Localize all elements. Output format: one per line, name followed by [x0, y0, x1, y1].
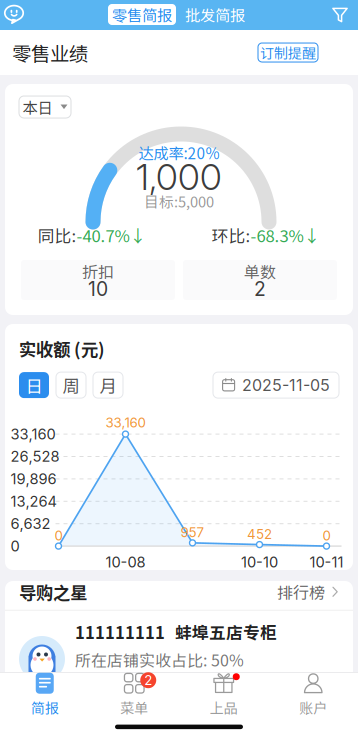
staticText: 蚌埠五店专柜 [175, 620, 277, 644]
button[interactable]: 本日 [19, 96, 71, 118]
staticText: 2 [144, 672, 152, 688]
staticText: 33,160 [105, 414, 145, 431]
button[interactable]: 简报 [0, 673, 89, 717]
staticText: 简报 [31, 697, 59, 717]
staticText: -40.7%↓ [76, 223, 146, 247]
button[interactable]: 导购之星 [5, 574, 353, 610]
staticText: 周 [62, 372, 79, 398]
staticText: 折扣 [82, 259, 114, 283]
staticText: 本日实收额: 500 [75, 675, 190, 698]
staticText: 6,632 [10, 515, 50, 532]
staticText: 0 [54, 527, 62, 544]
staticText: 2025-11-05 [242, 375, 330, 395]
button[interactable]: 2 [89, 673, 179, 717]
staticText: 批发简报 [185, 3, 245, 26]
staticText: 月 [99, 372, 116, 398]
staticText: 目标:5,000 [144, 190, 214, 212]
staticText: 导购之星 [19, 579, 87, 604]
button[interactable]: 批发简报 [185, 4, 245, 25]
staticText: 所在店铺实收占比: 50% [75, 648, 244, 671]
staticText: 订制提醒 [260, 42, 316, 63]
staticText: 日 [25, 372, 42, 398]
staticText: 0 [322, 527, 330, 544]
staticText: 环比: [211, 223, 250, 247]
button[interactable]: 日 [19, 372, 49, 398]
staticText: 0 [10, 537, 19, 555]
staticText: 零售简报 [112, 3, 172, 26]
button[interactable]: 消息 [0, 0, 29, 30]
button[interactable]: 零售简报 [108, 4, 176, 25]
staticText: 零售业绩 [12, 38, 88, 66]
button[interactable]: 上品 [179, 673, 268, 717]
button[interactable]: 2025-11-05 [213, 372, 339, 398]
button[interactable]: 月 [93, 372, 123, 398]
staticText: 26,528 [10, 448, 59, 465]
staticText: 957 [180, 524, 204, 540]
staticText: 同比: [37, 223, 76, 247]
button[interactable]: 账户 [268, 673, 358, 717]
staticText: 13,264 [10, 492, 56, 510]
staticText: 达成率:20% [138, 141, 219, 164]
staticText: 10 [88, 277, 108, 301]
staticText: 19,896 [10, 470, 56, 488]
staticText: 10-08 [105, 553, 145, 571]
staticText: -68.3%↓ [250, 223, 320, 247]
button[interactable]: 筛选 [327, 0, 353, 30]
staticText: 452 [247, 526, 272, 542]
staticText: 实收额 (元) [19, 336, 105, 361]
staticText: 33,160 [10, 425, 55, 443]
button[interactable]: 订制提醒 [258, 43, 318, 62]
staticText: 111111111 [75, 620, 165, 644]
staticText: 菜单 [120, 697, 148, 717]
staticText: 2 [254, 277, 266, 301]
staticText: 上品 [210, 697, 238, 717]
staticText: 10-11 [309, 553, 343, 571]
staticText: 10-10 [241, 553, 278, 571]
staticText: 本日 [22, 96, 52, 118]
staticText: 账户 [299, 697, 327, 717]
staticText: 1,000 [136, 155, 222, 199]
button[interactable]: 周 [56, 372, 86, 398]
staticText: 单数 [244, 259, 276, 283]
staticText: 排行榜 [277, 580, 325, 603]
